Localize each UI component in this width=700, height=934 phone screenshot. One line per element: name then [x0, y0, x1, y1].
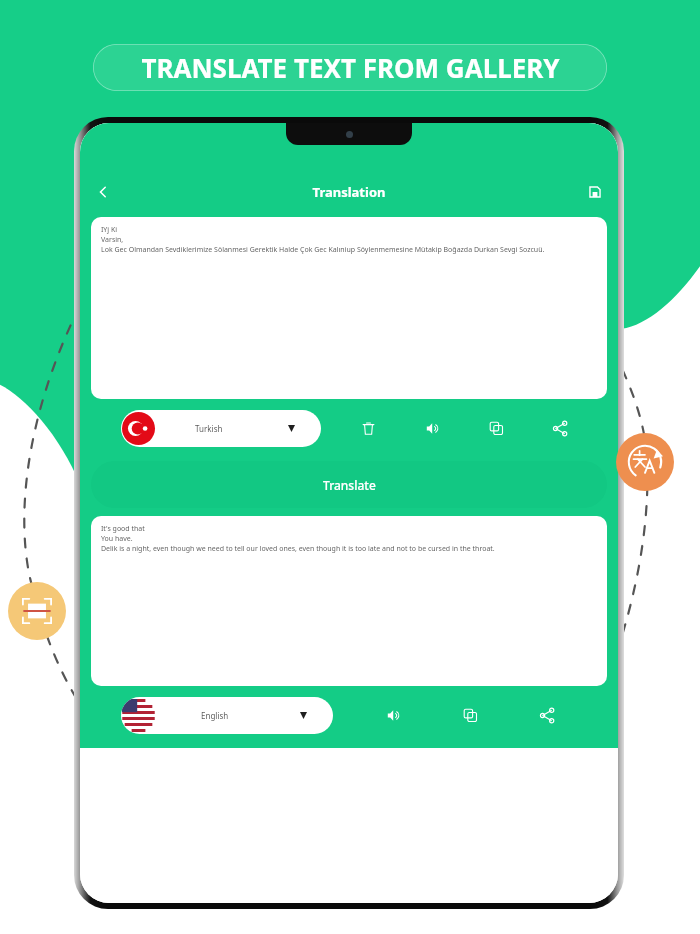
button[interactable]: Copy [453, 698, 487, 732]
staticText: IYj Ki [101, 225, 118, 235]
staticText: It's good that [101, 524, 145, 534]
staticText: Translation [126, 183, 572, 201]
button[interactable]: Turkish [121, 410, 321, 447]
button[interactable]: Share [543, 411, 577, 445]
staticText: English [201, 710, 229, 721]
staticText: TRANSLATE TEXT FROM GALLERY [141, 50, 560, 85]
button[interactable]: IYj Ki [91, 217, 607, 399]
button[interactable]: English [121, 697, 333, 734]
staticText: Lok Gec Olmandan Sevdiklerimize Sölanmes… [101, 245, 545, 255]
button[interactable]: Listen [376, 698, 410, 732]
button[interactable]: Back [80, 175, 126, 209]
staticText: Varsin, [101, 235, 124, 245]
button[interactable]: It's good that [91, 516, 607, 686]
staticText: Delik is a night, even though we need to… [101, 544, 495, 554]
button[interactable]: Translate [616, 433, 674, 491]
button[interactable]: Copy [479, 411, 513, 445]
button[interactable]: TRANSLATE TEXT FROM GALLERY [93, 44, 607, 91]
button[interactable]: Translate [91, 461, 607, 508]
button[interactable]: Scan document [8, 582, 66, 640]
button[interactable]: Delete [351, 411, 385, 445]
button[interactable]: Listen [415, 411, 449, 445]
staticText: Turkish [195, 423, 223, 434]
staticText: Translate [323, 477, 376, 493]
button[interactable]: Save [572, 175, 618, 209]
button[interactable]: Share [530, 698, 564, 732]
staticText: You have. [101, 534, 133, 544]
